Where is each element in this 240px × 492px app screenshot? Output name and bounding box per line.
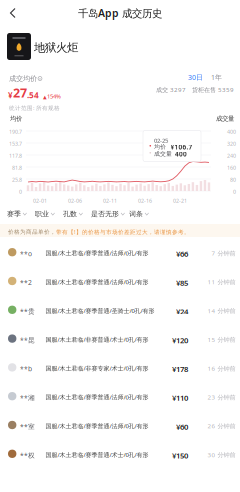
staticText: ¥	[8, 90, 13, 100]
button[interactable]: Back	[0, 0, 26, 26]
staticText: 国服/木土君临/赛季普通/圣骑士/0孔/有形	[45, 307, 154, 315]
staticText: 30日	[188, 72, 203, 82]
staticText: 带有【!】的价格与市场价差距过大，请谨慎参考。	[56, 228, 190, 236]
button[interactable]: **贵	[0, 296, 240, 324]
button[interactable]: 是否无形	[91, 208, 129, 220]
staticText: ¥110	[172, 393, 188, 403]
staticText: 价格为商品单价，	[8, 228, 56, 235]
staticText: **昆	[20, 335, 35, 344]
staticText: 15 分钟前	[207, 335, 235, 344]
staticText: ¥24	[176, 306, 188, 317]
staticText: 国服/木土君临/赛季普通/法师/0孔/有形	[45, 422, 148, 430]
button[interactable]: **室	[0, 411, 240, 440]
staticText: 7 分钟前	[211, 249, 235, 257]
staticText: 26 分钟前	[207, 422, 235, 430]
staticText: 02-21	[173, 197, 187, 204]
staticText: 0	[233, 188, 236, 195]
staticText: 词条	[129, 210, 143, 218]
staticText: **湘	[20, 393, 35, 402]
staticText: **贵	[20, 307, 35, 316]
staticText: 国服/木土君临/赛季普通/法师/0孔/有形	[45, 393, 148, 401]
staticText: **室	[20, 422, 35, 431]
staticText: 赛季	[7, 210, 21, 218]
staticText: 地狱火炬	[34, 40, 78, 55]
staticText: 154%	[47, 92, 61, 100]
staticText: 均价	[154, 143, 166, 150]
staticText: 160	[227, 164, 236, 171]
staticText: 81.8	[12, 164, 22, 171]
button[interactable]: **权	[0, 440, 240, 468]
staticText: 117.8	[9, 152, 22, 159]
staticText: 均价	[10, 114, 22, 123]
staticText: .54	[27, 89, 39, 101]
button[interactable]: 1年	[211, 72, 222, 82]
button[interactable]: **昆	[0, 324, 240, 353]
button[interactable]: **o	[0, 238, 240, 267]
staticText: ¥85	[176, 277, 188, 288]
staticText: 0	[19, 188, 22, 195]
staticText: 02-06	[68, 197, 82, 204]
staticText: **o	[20, 249, 32, 258]
staticText: 400	[227, 128, 236, 135]
staticText: 240	[227, 152, 236, 159]
staticText: **b	[20, 364, 32, 373]
staticText: 30 分钟前	[207, 451, 235, 459]
staticText: 02-16	[138, 197, 152, 204]
staticText: 国服/木土君临/赛季普通/术士/0孔/有形	[45, 451, 148, 459]
staticText: 16 分钟前	[207, 364, 235, 373]
button[interactable]: 赛季	[7, 208, 35, 220]
staticText: ¥106.7	[170, 143, 192, 151]
staticText: **权	[20, 451, 35, 460]
button[interactable]: **湘	[0, 382, 240, 411]
staticText: 27	[13, 84, 27, 101]
staticText: 国服/木土君临/赛季普通/法师/0孔/有形	[45, 249, 148, 257]
staticText: 190.7	[9, 128, 22, 135]
staticText: 1年	[211, 72, 222, 82]
staticText: 货柜在售 5359	[192, 85, 234, 94]
staticText: ▲	[39, 94, 47, 100]
staticText: 成交均价	[9, 74, 37, 83]
staticText: 320	[227, 140, 236, 147]
staticText: ¥178	[172, 364, 188, 374]
button[interactable]: **b	[0, 353, 240, 382]
staticText: 23 分钟前	[207, 393, 235, 401]
staticText: ¥120	[172, 335, 188, 345]
staticText: **2	[20, 278, 32, 287]
staticText: 80	[230, 176, 236, 183]
staticText: 02-01	[33, 197, 47, 204]
staticText: 是否无形	[91, 210, 119, 218]
button[interactable]: 职业	[35, 208, 63, 220]
staticText: 国服/木土君临/非赛普通/术士/0孔/有形	[45, 335, 148, 344]
staticText: 职业	[35, 210, 49, 218]
staticText: 国服/木土君临/非赛专家/术士/0孔/有形	[45, 364, 148, 372]
button[interactable]: 30日	[188, 72, 203, 82]
staticText: 孔数	[63, 210, 77, 218]
staticText: 11 分钟前	[207, 278, 235, 286]
staticText: 25.8	[12, 176, 22, 183]
staticText: 02-25	[154, 136, 168, 144]
staticText: ¥66	[176, 249, 188, 259]
staticText: 千岛App 成交历史	[78, 6, 162, 20]
staticText: ¥150	[172, 450, 188, 461]
button[interactable]: 孔数	[63, 208, 91, 220]
staticText: 国服/木土君临/赛季普通/法师/0孔/有形	[45, 278, 148, 286]
staticText: 400	[175, 150, 187, 158]
staticText: ¥60	[176, 421, 188, 432]
staticText: 14 分钟前	[207, 307, 235, 315]
staticText: 成交 3297	[156, 85, 186, 94]
staticText: 统计范围: 所有规格	[9, 104, 60, 112]
staticText: 成交量	[216, 114, 234, 123]
staticText: 02-11	[103, 197, 117, 204]
button[interactable]: 词条	[129, 208, 157, 220]
staticText: 成交量	[154, 150, 172, 157]
button[interactable]: **2	[0, 267, 240, 296]
staticText: 153.7	[9, 140, 22, 147]
